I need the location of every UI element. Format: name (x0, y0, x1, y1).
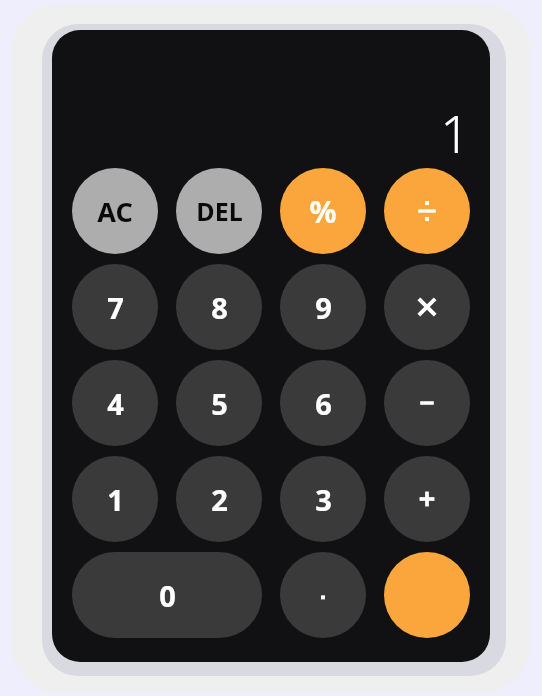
staticText: % (309, 191, 337, 232)
staticText: 4 (107, 384, 124, 423)
staticText: 8 (211, 288, 228, 327)
staticText: 3 (315, 480, 332, 519)
button[interactable]: 9 (280, 264, 366, 350)
button[interactable]: Divide (384, 168, 470, 254)
staticText: 1 (440, 97, 470, 168)
staticText: 7 (107, 288, 124, 327)
button[interactable]: Plus (384, 456, 470, 542)
staticText: 9 (315, 288, 332, 327)
button[interactable]: AC (72, 168, 158, 254)
button[interactable]: Decimal point (280, 552, 366, 638)
button[interactable]: 0 (72, 552, 262, 638)
button[interactable]: 3 (280, 456, 366, 542)
staticText: 1 (107, 480, 124, 519)
button[interactable]: 7 (72, 264, 158, 350)
button[interactable]: 8 (176, 264, 262, 350)
staticText: 5 (211, 384, 228, 423)
button[interactable]: Minus (384, 360, 470, 446)
button[interactable]: 1 (72, 456, 158, 542)
staticText: 6 (315, 384, 332, 423)
button[interactable]: % (280, 168, 366, 254)
button[interactable]: 2 (176, 456, 262, 542)
button[interactable]: Multiply (384, 264, 470, 350)
staticText: 0 (159, 576, 176, 615)
button[interactable]: 4 (72, 360, 158, 446)
button[interactable]: Equals (384, 552, 470, 638)
button[interactable]: DEL (176, 168, 262, 254)
button[interactable]: 5 (176, 360, 262, 446)
button[interactable]: 6 (280, 360, 366, 446)
staticText: DEL (196, 194, 243, 228)
staticText: AC (97, 193, 133, 230)
staticText: 2 (211, 480, 228, 519)
